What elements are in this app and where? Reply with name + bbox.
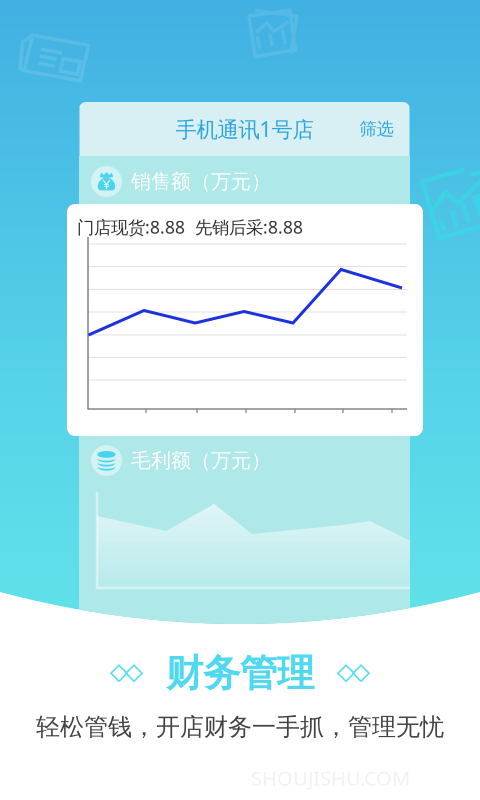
staticText: SHOUJISHU.COM bbox=[251, 765, 410, 791]
staticText: 毛利额（万元） bbox=[131, 448, 271, 473]
staticText: 筛选 bbox=[359, 118, 393, 140]
staticText: 财务管理 bbox=[166, 650, 314, 696]
staticText: 手机通讯1号店 bbox=[175, 115, 313, 143]
staticText: 轻松管钱，开店财务一手抓，管理无忧 bbox=[36, 712, 444, 742]
staticText: 门店现货:8.88 先销后采:8.88 bbox=[77, 215, 303, 238]
staticText: 销售额（万元） bbox=[131, 169, 271, 194]
button[interactable]: 筛选 bbox=[343, 106, 409, 152]
